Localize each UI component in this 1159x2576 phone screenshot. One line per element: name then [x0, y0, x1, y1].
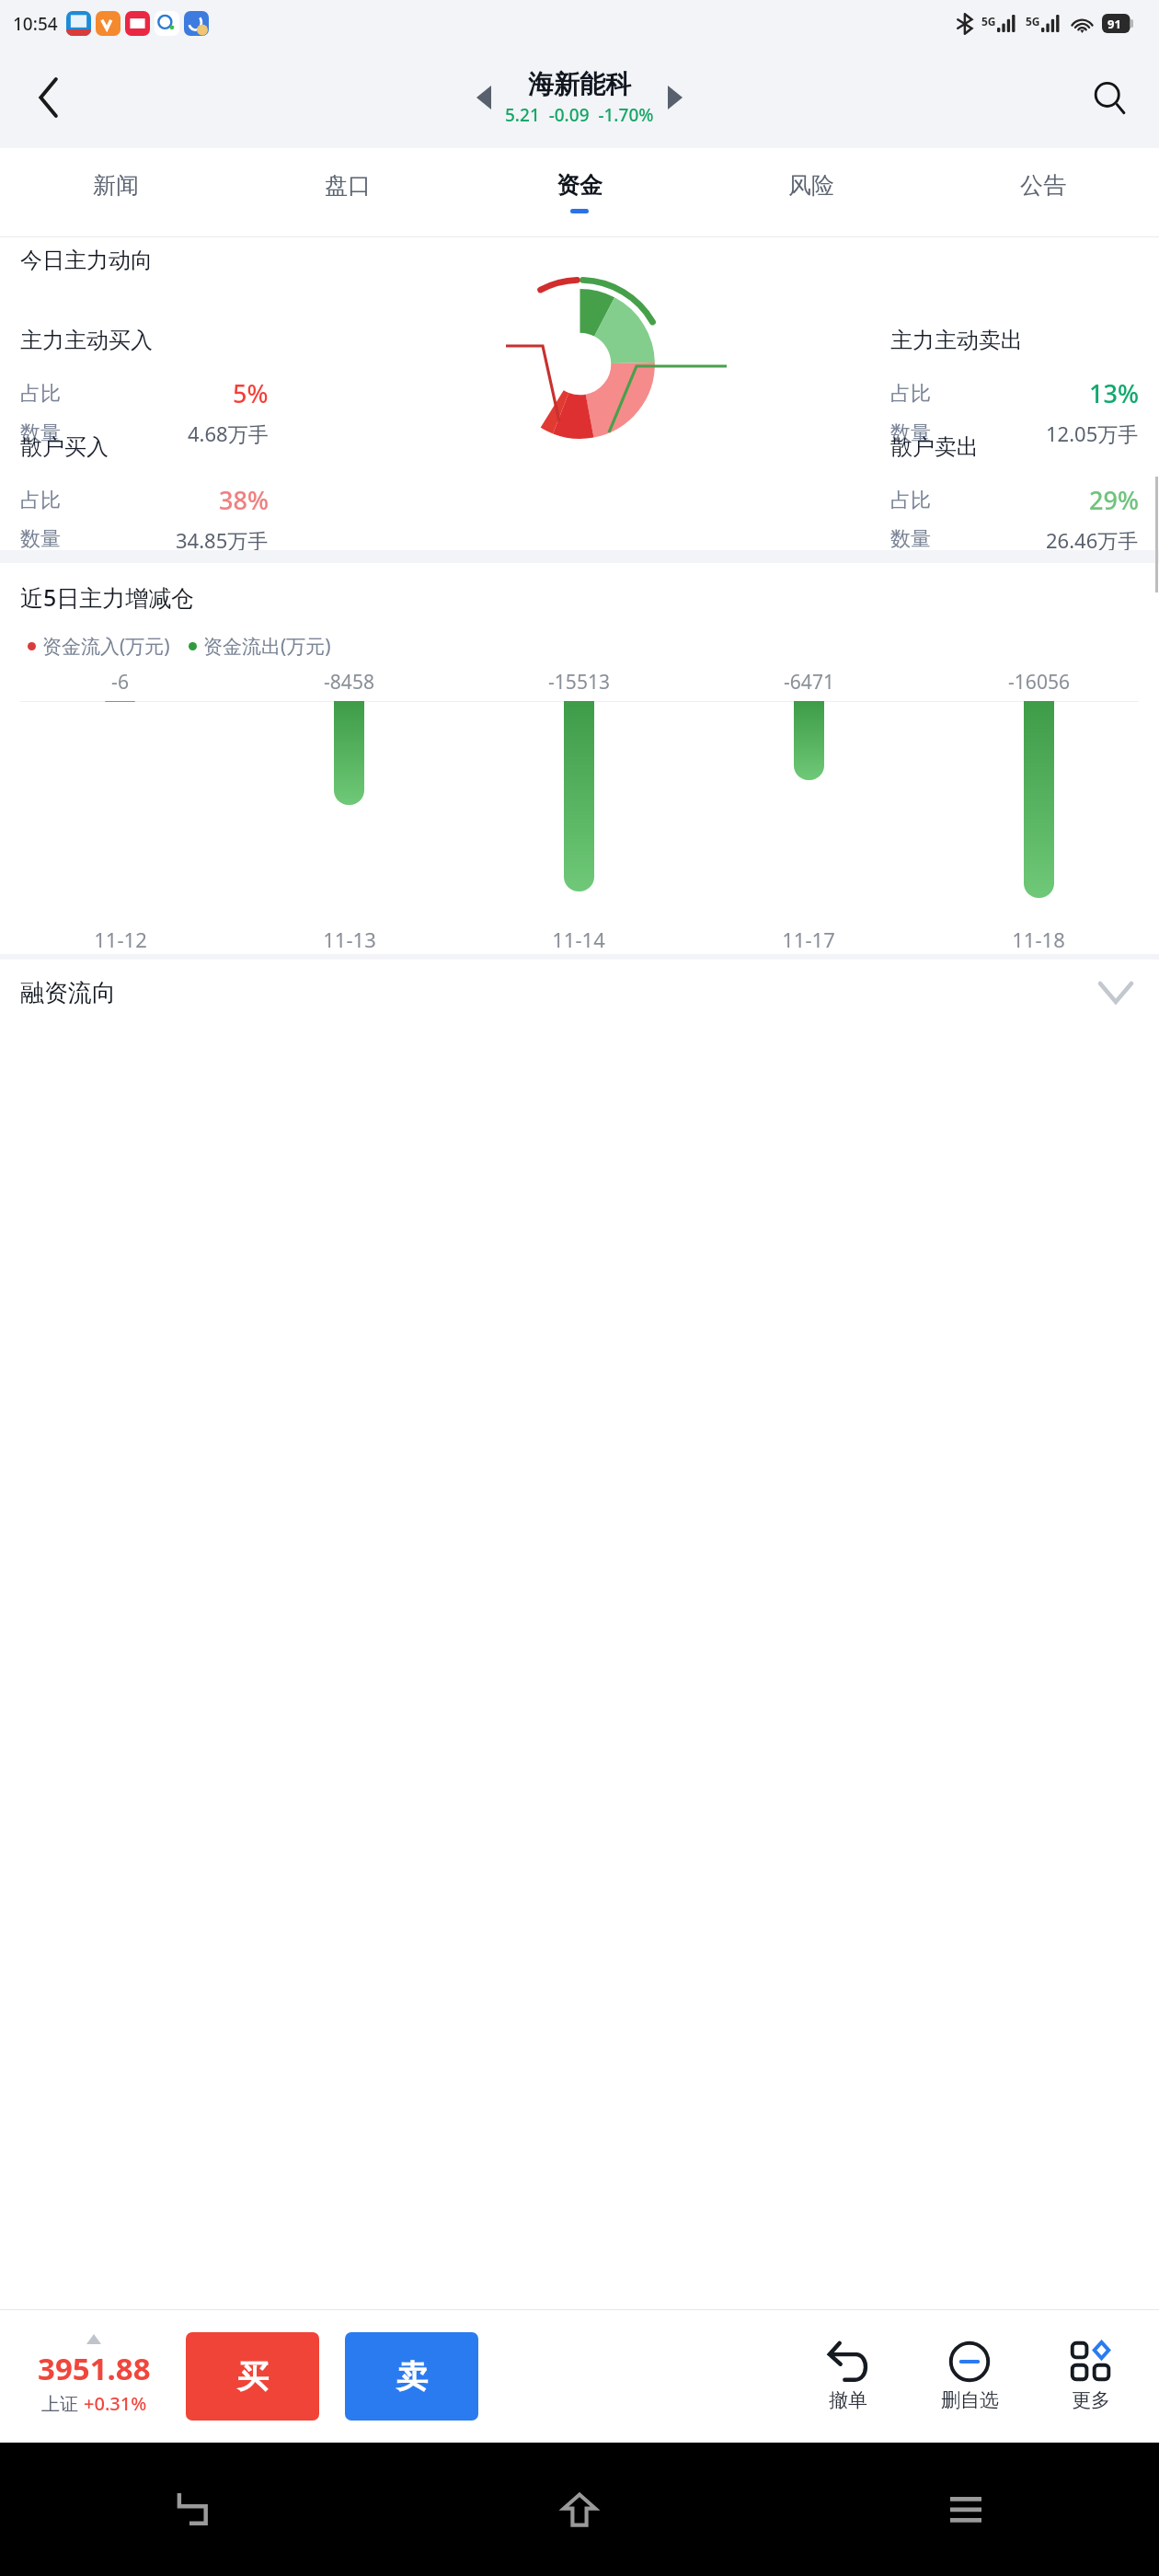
- staticText: 占比: [20, 381, 61, 407]
- staticText: 新闻: [93, 171, 139, 200]
- staticText: +0.31%: [84, 2391, 147, 2416]
- staticText: 11-17: [782, 926, 835, 953]
- staticText: 删自选: [941, 2388, 999, 2412]
- button[interactable]: Search: [1076, 64, 1142, 131]
- staticText: -15513: [548, 669, 610, 696]
- button[interactable]: 更多: [1039, 2340, 1142, 2412]
- button[interactable]: Back: [0, 2443, 386, 2576]
- button[interactable]: 撤单: [797, 2340, 900, 2412]
- button[interactable]: 风险: [695, 148, 927, 236]
- staticText: 占比: [890, 488, 931, 513]
- button[interactable]: 3951.88: [11, 2336, 177, 2416]
- staticText: 撤单: [829, 2388, 867, 2412]
- staticText: 10:54: [13, 12, 58, 36]
- staticText: 盘口: [325, 171, 371, 200]
- staticText: 海新能科: [528, 68, 631, 100]
- staticText: 上证: [41, 2391, 84, 2416]
- staticText: 数量: [890, 526, 931, 550]
- button[interactable]: Recent apps: [773, 2443, 1159, 2576]
- staticText: 29%: [1089, 483, 1139, 517]
- staticText: 更多: [1072, 2388, 1110, 2412]
- staticText: 主力主动卖出: [890, 327, 1023, 354]
- button[interactable]: 买: [186, 2332, 319, 2421]
- staticText: 34.85万手: [176, 526, 269, 550]
- staticText: 资金流出(万元): [203, 633, 331, 660]
- button[interactable]: Next stock: [654, 76, 696, 119]
- button[interactable]: Back: [17, 65, 81, 130]
- button[interactable]: Home: [386, 2443, 773, 2576]
- staticText: 卖: [396, 2357, 428, 2397]
- staticText: 12.05万手: [1046, 420, 1139, 447]
- staticText: 26.46万手: [1046, 526, 1139, 550]
- button[interactable]: Previous stock: [463, 76, 505, 119]
- button[interactable]: 卖: [345, 2332, 478, 2421]
- staticText: 今日主力动向: [20, 247, 153, 274]
- staticText: 4.68万手: [188, 420, 269, 447]
- staticText: 买: [237, 2357, 269, 2397]
- staticText: -6: [111, 669, 129, 696]
- button[interactable]: 融资流向: [0, 960, 1159, 1026]
- staticText: 资金: [557, 171, 602, 200]
- staticText: 91: [1107, 16, 1121, 32]
- staticText: 散户卖出: [890, 433, 979, 461]
- staticText: 38%: [219, 483, 269, 517]
- staticText: -16056: [1008, 669, 1070, 696]
- button[interactable]: 资金: [464, 148, 695, 236]
- staticText: 占比: [20, 488, 61, 513]
- button[interactable]: 新闻: [0, 148, 232, 236]
- staticText: 3951.88: [38, 2348, 151, 2389]
- button[interactable]: 删自选: [918, 2340, 1021, 2412]
- staticText: 11-14: [552, 926, 605, 953]
- staticText: 11-13: [323, 926, 376, 953]
- button[interactable]: 盘口: [232, 148, 464, 236]
- staticText: 占比: [890, 381, 931, 407]
- staticText: 5%: [233, 376, 269, 410]
- staticText: 资金流入(万元): [42, 633, 170, 660]
- staticText: -6471: [784, 669, 834, 696]
- staticText: 主力主动买入: [20, 327, 153, 354]
- staticText: 数量: [20, 420, 61, 446]
- staticText: 5G: [981, 14, 996, 29]
- staticText: 数量: [890, 420, 931, 446]
- staticText: 公告: [1020, 171, 1066, 200]
- staticText: 融资流向: [20, 978, 116, 1008]
- staticText: 近5日主力增减仓: [20, 581, 195, 613]
- staticText: 11-12: [94, 926, 147, 953]
- staticText: 数量: [20, 526, 61, 550]
- staticText: -8458: [324, 669, 374, 696]
- staticText: 5G: [1026, 14, 1040, 29]
- button[interactable]: 公告: [927, 148, 1159, 236]
- staticText: 5.21 -0.09 -1.70%: [505, 103, 654, 127]
- staticText: 风险: [788, 171, 834, 200]
- staticText: 散户买入: [20, 433, 109, 461]
- staticText: 11-18: [1012, 926, 1065, 953]
- staticText: 13%: [1089, 376, 1139, 410]
